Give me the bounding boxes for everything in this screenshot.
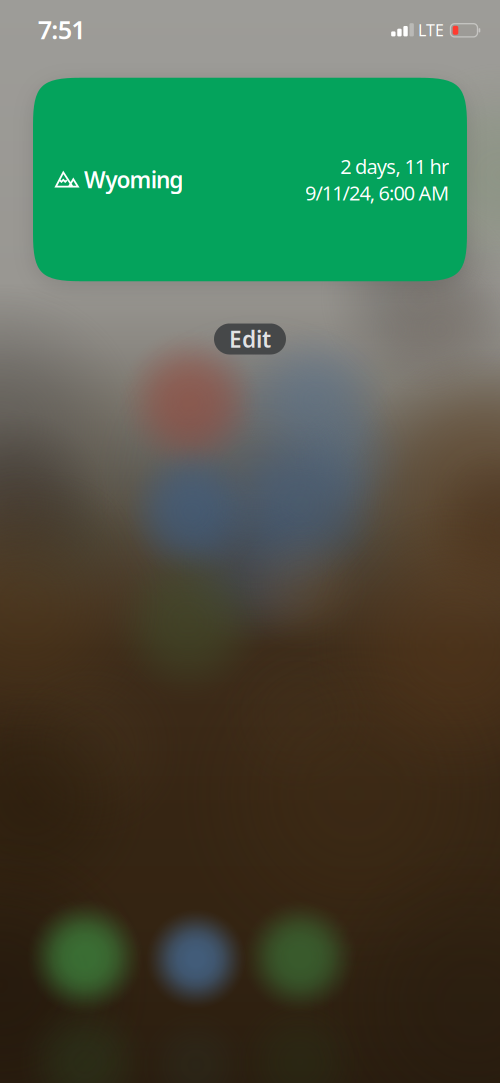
staticText: Wyoming <box>84 164 183 194</box>
staticText: LTE <box>418 19 444 41</box>
button[interactable]: Wyoming <box>33 78 467 281</box>
staticText: Edit <box>229 324 271 354</box>
staticText: 7:51 <box>38 13 85 46</box>
button[interactable]: Edit <box>214 323 286 354</box>
staticText: 9/11/24, 6:00 AM <box>305 179 449 206</box>
staticText: 2 days, 11 hr <box>340 153 449 179</box>
